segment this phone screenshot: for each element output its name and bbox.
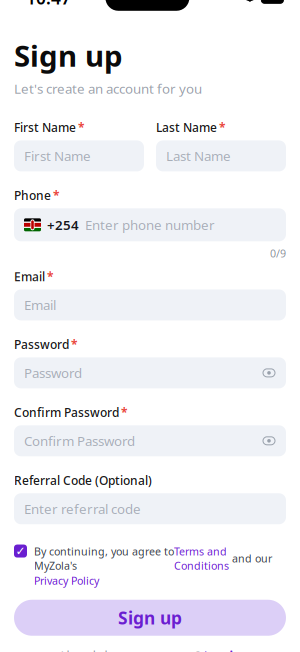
staticText: +254 <box>47 216 79 234</box>
staticText: Last Name <box>166 147 231 165</box>
staticText: Email <box>14 268 45 284</box>
button[interactable]: Terms and Conditions <box>174 544 229 573</box>
staticText: Password <box>24 364 82 382</box>
button[interactable]: Agree to terms <box>14 544 27 558</box>
button[interactable]: Privacy Policy <box>34 574 99 588</box>
staticText: Privacy Policy <box>34 574 99 588</box>
staticText: * <box>78 119 85 135</box>
button[interactable]: Email <box>14 289 286 320</box>
button[interactable]: +254 <box>14 208 286 241</box>
staticText: Enter phone number <box>85 216 215 234</box>
button[interactable]: Password <box>14 357 286 388</box>
staticText: Confirm Password <box>14 404 119 420</box>
staticText: Confirm Password <box>24 432 135 450</box>
staticText: First Name <box>24 147 91 165</box>
button[interactable]: Enter referral code <box>14 493 286 524</box>
staticText: Email <box>24 296 56 314</box>
button[interactable]: Confirm Password <box>14 425 286 456</box>
staticText: Sign up <box>118 606 182 629</box>
staticText: 0/9 <box>270 246 286 260</box>
staticText: * <box>47 268 54 284</box>
staticText: Terms and Conditions <box>174 544 229 573</box>
staticText: Password <box>14 336 69 352</box>
staticText: Referral Code (Optional) <box>14 472 152 488</box>
staticText: By continuing, you agree to MyZola's <box>34 544 174 573</box>
staticText: * <box>121 404 128 420</box>
staticText: Phone <box>14 187 51 203</box>
staticText: 10:47 <box>26 0 71 9</box>
staticText: Sign up <box>14 36 123 75</box>
button[interactable]: Log in <box>203 648 241 652</box>
staticText: Let's create an account for you <box>14 80 202 97</box>
button[interactable]: Sign up <box>14 600 286 636</box>
staticText: and our <box>229 551 272 565</box>
staticText: First Name <box>14 119 76 135</box>
button[interactable]: First Name <box>14 140 144 171</box>
staticText: * <box>71 336 78 352</box>
staticText: * <box>53 187 60 203</box>
staticText: Already have an account? <box>58 648 203 652</box>
staticText: ✓ <box>15 544 25 558</box>
staticText: * <box>219 119 226 135</box>
staticText: Last Name <box>156 119 217 135</box>
button[interactable]: Last Name <box>156 140 286 171</box>
staticText: Log in <box>203 648 241 652</box>
staticText: Enter referral code <box>24 500 141 518</box>
